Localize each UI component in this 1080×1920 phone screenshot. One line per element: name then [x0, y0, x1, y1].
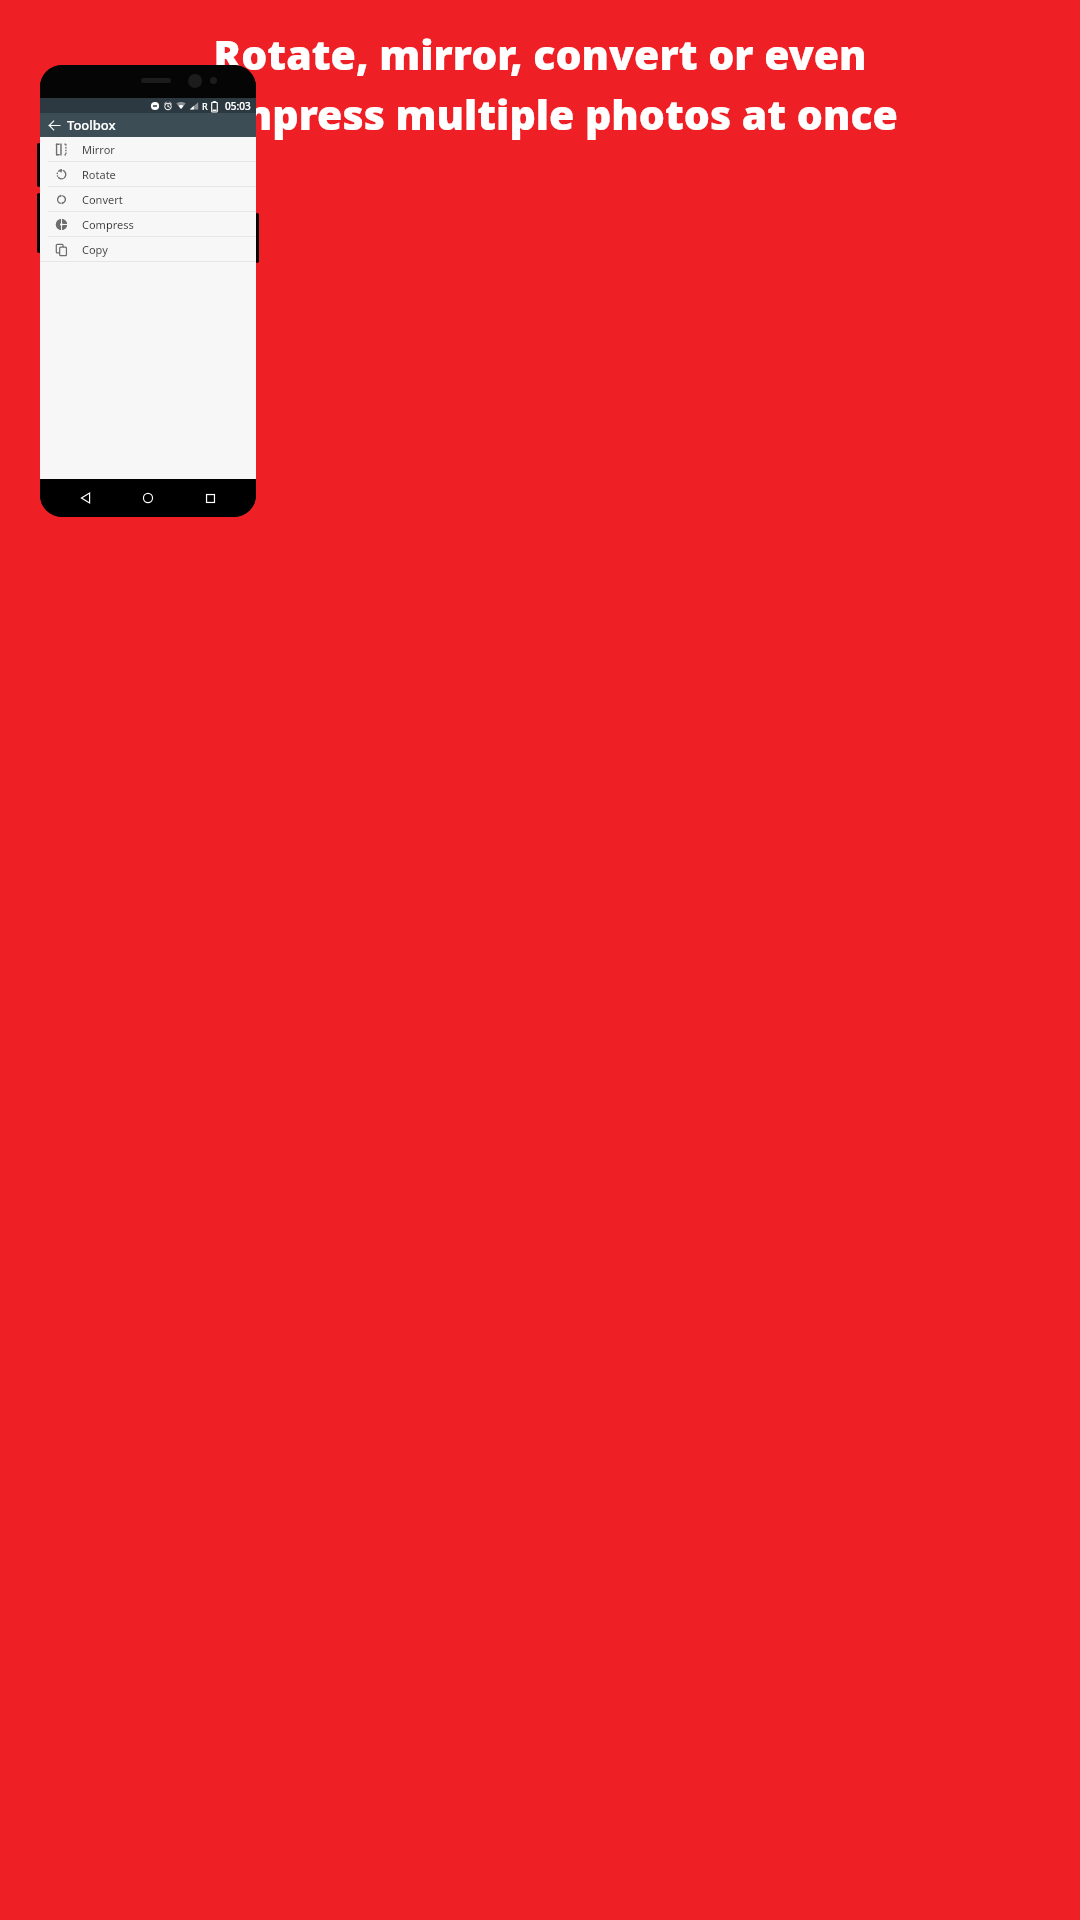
button[interactable]: Recents	[198, 486, 222, 510]
staticText: Compress	[82, 217, 134, 232]
button[interactable]: Rotate	[40, 162, 256, 186]
button[interactable]: Compress	[40, 212, 256, 236]
button[interactable]: Mirror	[40, 137, 256, 161]
staticText: Mirror	[82, 142, 115, 157]
staticText: Convert	[82, 192, 123, 207]
staticText: 05:03	[225, 99, 251, 113]
staticText: compress multiple photos at once	[183, 86, 898, 142]
staticText: R	[202, 100, 208, 112]
button[interactable]: Back	[43, 114, 65, 136]
staticText: Toolbox	[67, 116, 116, 134]
staticText: Rotate, mirror, convert or even	[213, 26, 867, 82]
button[interactable]: Back	[74, 486, 98, 510]
staticText: Copy	[82, 242, 108, 257]
button[interactable]: Copy	[40, 237, 256, 261]
button[interactable]: Convert	[40, 187, 256, 211]
staticText: Rotate	[82, 167, 116, 182]
button[interactable]: Home	[136, 486, 160, 510]
